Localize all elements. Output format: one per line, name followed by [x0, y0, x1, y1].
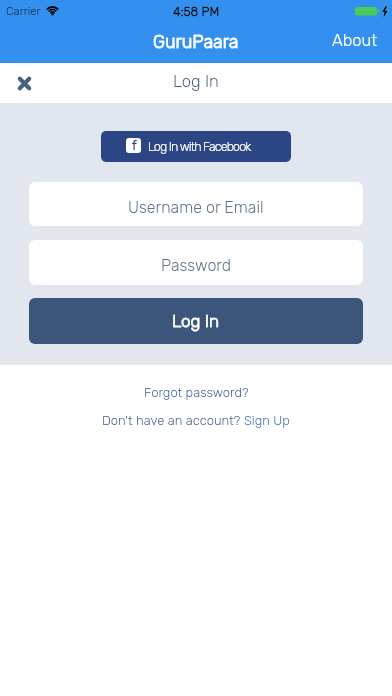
- staticText: f: [132, 138, 137, 153]
- staticText: Don't have an account?: [102, 413, 244, 428]
- button[interactable]: About: [318, 23, 392, 59]
- button[interactable]: Forgot password?: [136, 383, 257, 402]
- staticText: Log In: [172, 311, 220, 331]
- button[interactable]: Log In: [29, 298, 363, 344]
- staticText: GuruPaara: [153, 31, 239, 52]
- staticText: Log In: [173, 72, 219, 92]
- button[interactable]: Username or Email: [29, 182, 363, 226]
- staticText: About: [332, 31, 378, 51]
- staticText: Password: [161, 256, 231, 275]
- button[interactable]: Sign Up: [244, 411, 290, 430]
- staticText: Forgot password?: [144, 385, 249, 400]
- staticText: Carrier: [6, 4, 41, 18]
- staticText: Log In with Facebook: [148, 139, 251, 154]
- button[interactable]: f: [101, 131, 291, 162]
- staticText: Sign Up: [244, 413, 290, 428]
- button[interactable]: [0, 69, 41, 98]
- staticText: 4:58 PM: [173, 4, 220, 19]
- button[interactable]: Password: [29, 240, 363, 285]
- staticText: Username or Email: [128, 198, 264, 217]
